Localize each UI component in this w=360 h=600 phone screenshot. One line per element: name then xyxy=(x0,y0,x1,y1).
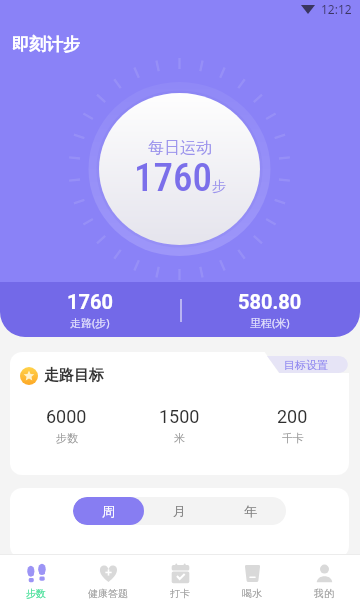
button[interactable]: 1760 xyxy=(0,282,180,337)
button[interactable]: 年 xyxy=(215,497,286,525)
staticText: 200 xyxy=(277,406,308,427)
staticText: 每日运动 xyxy=(148,138,212,158)
staticText: 走路(步) xyxy=(70,315,110,330)
button[interactable]: 周 xyxy=(73,497,144,525)
staticText: 打卡 xyxy=(170,587,190,600)
button[interactable]: 步数 xyxy=(0,555,72,600)
button[interactable]: 6000 xyxy=(10,406,123,445)
button[interactable]: 月 xyxy=(144,497,215,525)
button[interactable]: 健康答题 xyxy=(72,555,144,600)
staticText: 周 xyxy=(102,503,115,519)
button[interactable]: 1500 xyxy=(123,406,236,445)
staticText: 1760 xyxy=(67,290,113,313)
staticText: 步 xyxy=(212,178,226,196)
staticText: 即刻计步 xyxy=(12,34,80,55)
button[interactable]: 喝水 xyxy=(216,555,288,600)
staticText: 我的 xyxy=(314,587,334,600)
button[interactable]: 200 xyxy=(236,406,349,445)
button[interactable]: 580.80 xyxy=(180,282,360,337)
staticText: 健康答题 xyxy=(88,587,128,600)
staticText: 1500 xyxy=(159,406,200,427)
staticText: 千卡 xyxy=(282,431,304,445)
staticText: 里程(米) xyxy=(250,315,290,330)
button[interactable]: 打卡 xyxy=(144,555,216,600)
staticText: 月 xyxy=(173,503,186,519)
staticText: 年 xyxy=(244,503,257,519)
button[interactable]: 我的 xyxy=(288,555,360,600)
staticText: 喝水 xyxy=(242,587,262,600)
staticText: 米 xyxy=(174,431,185,445)
staticText: 步数 xyxy=(56,431,78,445)
staticText: 目标设置 xyxy=(284,358,328,372)
staticText: 6000 xyxy=(46,406,87,427)
staticText: 1760 xyxy=(134,155,212,201)
button[interactable]: 目标设置 xyxy=(250,352,349,374)
staticText: 580.80 xyxy=(238,290,302,313)
staticText: 走路目标 xyxy=(44,366,104,385)
staticText: 12:12 xyxy=(321,1,352,17)
staticText: 步数 xyxy=(26,587,46,600)
